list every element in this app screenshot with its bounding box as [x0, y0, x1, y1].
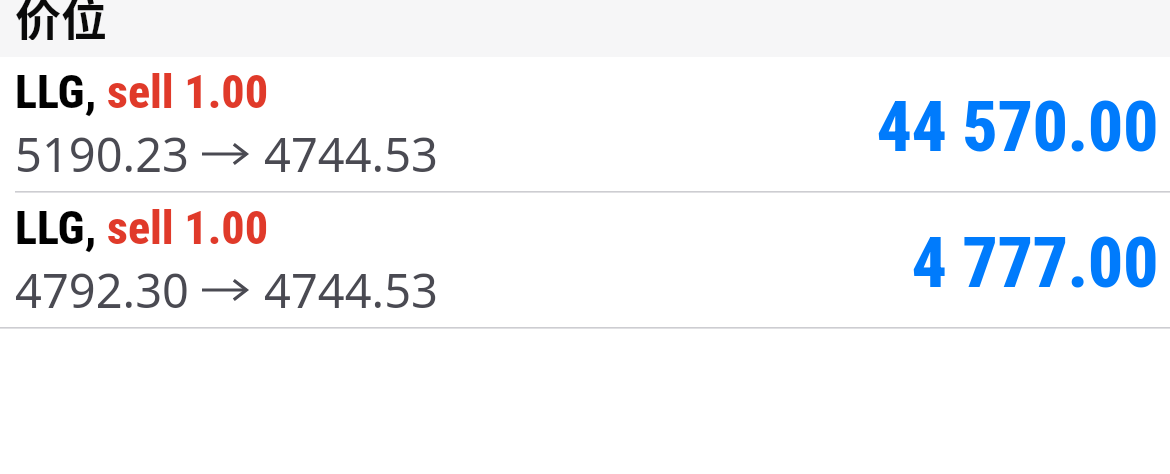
button[interactable]: LLG, sell 1.00 [0, 193, 1170, 327]
other: to [202, 273, 248, 307]
button[interactable]: LLG, sell 1.00 [0, 57, 1170, 191]
staticText: 4744.53 [264, 122, 438, 186]
staticText: 4744.53 [264, 258, 438, 322]
staticText: LLG, sell 1.00 [15, 201, 269, 255]
staticText: 4 777.00 [0, 222, 1158, 304]
staticText: 44 570.00 [0, 86, 1158, 168]
staticText: LLG, sell 1.00 [15, 65, 269, 119]
staticText: 4792.30 [15, 258, 189, 322]
other: to [202, 137, 248, 171]
staticText: 5190.23 [15, 122, 189, 186]
staticText: 价位 [15, 0, 107, 40]
